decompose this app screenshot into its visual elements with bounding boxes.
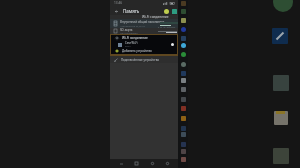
button[interactable]: App [181,36,186,41]
button[interactable]: App [181,126,186,131]
button[interactable]: App [181,27,186,32]
staticText: Добавить устройство [122,49,152,53]
button[interactable]: Добавить устройство [111,48,177,54]
staticText: Подключённые устройства [121,58,159,62]
button[interactable]: App [181,1,186,6]
button[interactable]: App [181,149,186,154]
button[interactable]: App [181,62,186,67]
staticText: Выкл. [125,45,132,48]
button[interactable]: Apps [171,8,177,14]
button[interactable]: Account [163,8,169,14]
button[interactable]: App [181,78,186,83]
button[interactable]: App [181,43,186,48]
button[interactable]: Hide keyboard [116,159,126,168]
staticText: Используется 23,46 ГБ [120,25,145,28]
button[interactable]: App [181,87,186,92]
button[interactable]: Подключённые устройства [110,56,178,63]
button[interactable]: App [181,9,186,14]
staticText: Wi-Fi соединение [122,36,148,40]
button[interactable]: Back [162,159,172,168]
button[interactable]: Внутренний общий накопитель [110,19,178,28]
button[interactable]: App [181,97,186,102]
button[interactable]: Clipboard [274,111,288,125]
staticText: Внутренний общий накопитель [120,20,165,24]
button[interactable]: Home [147,159,157,168]
staticText: 8,55 ГБ свободно [158,26,176,29]
button[interactable]: Back [113,8,119,14]
button[interactable]: Recents [131,159,141,168]
staticText: 13:46 [114,1,123,5]
button[interactable]: Editor [272,28,288,44]
staticText: Wi-Fi соединение [142,15,169,19]
staticText: Память [123,8,140,14]
button[interactable]: App [181,157,186,162]
button[interactable]: App [181,116,186,121]
button[interactable]: Back [110,6,178,15]
button[interactable]: App [181,71,186,76]
staticText: Не установлена [120,32,138,34]
button[interactable]: Wi-Fi соединение [111,35,177,41]
button[interactable]: App [181,142,186,147]
button[interactable]: SD-карта [110,28,178,34]
staticText: Сети Wi-Fi [125,41,138,45]
button[interactable]: App [181,106,186,111]
button[interactable]: App [181,132,186,137]
button[interactable]: Сети Wi-Fi [111,41,177,48]
button[interactable]: App [181,18,186,23]
button[interactable]: App [181,52,186,57]
staticText: SD-карта [120,28,133,32]
button[interactable]: Browser [273,0,293,12]
